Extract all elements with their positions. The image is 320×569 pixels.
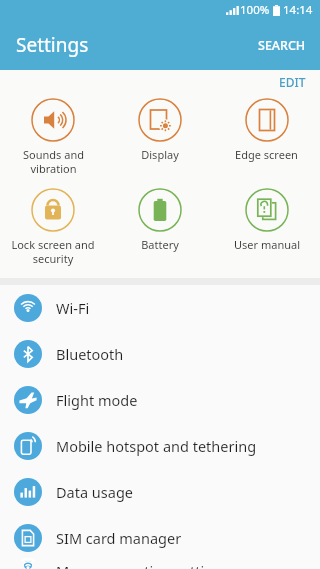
button[interactable]: More connection settings [0,561,320,569]
other: Bluetooth [14,340,42,368]
staticText: 14:14 [283,2,313,18]
staticText: Sounds and vibration [23,147,84,176]
staticText: More connection settings [56,561,229,569]
button[interactable]: Data usage [0,469,320,515]
button[interactable]: Mobile hotspot and tethering [0,423,320,469]
other: SIM card manager [14,524,42,552]
staticText: User manual [234,237,300,252]
staticText: Edge screen [235,147,298,162]
other: Data usage [14,478,42,506]
button[interactable]: Display [106,98,213,162]
button[interactable]: User manual [213,188,320,252]
button[interactable]: Sounds and vibration [0,98,106,176]
staticText: Display [141,147,179,162]
button[interactable]: Lock screen and security [0,188,106,266]
staticText: Wi-Fi [56,298,90,318]
button[interactable]: Edge screen [213,98,320,162]
button[interactable]: EDIT [265,70,320,92]
staticText: Data usage [56,482,133,502]
other: Mobile hotspot and tethering [14,432,42,460]
staticText: 100% [240,2,270,18]
staticText: SEARCH [258,37,306,54]
other: More connection settings [14,561,42,569]
staticText: Lock screen and security [11,237,95,266]
button[interactable]: Wi-Fi [0,285,320,331]
button[interactable]: SEARCH [244,27,320,64]
staticText: Battery [141,237,179,252]
other: Flight mode [14,386,42,414]
staticText: Flight mode [56,390,138,410]
other: Wi-Fi [14,294,42,322]
staticText: SIM card manager [56,528,182,548]
staticText: Bluetooth [56,344,124,364]
staticText: Mobile hotspot and tethering [56,436,257,456]
button[interactable]: Battery [106,188,213,252]
staticText: EDIT [279,74,306,88]
button[interactable]: Flight mode [0,377,320,423]
button[interactable]: Bluetooth [0,331,320,377]
button[interactable]: SIM card manager [0,515,320,561]
staticText: Settings [16,32,89,58]
